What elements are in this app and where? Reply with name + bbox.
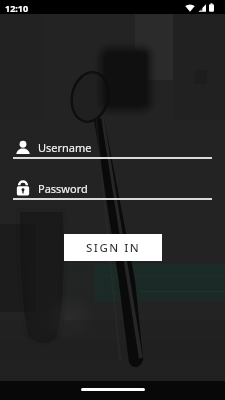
staticText: SIGN IN (86, 240, 141, 256)
button[interactable]: Password (13, 181, 212, 200)
staticText: Username (38, 140, 92, 155)
button[interactable]: Username (13, 140, 212, 159)
staticText: 12:10 (5, 2, 29, 14)
staticText: Password (38, 181, 88, 196)
button[interactable]: SIGN IN (64, 234, 162, 261)
